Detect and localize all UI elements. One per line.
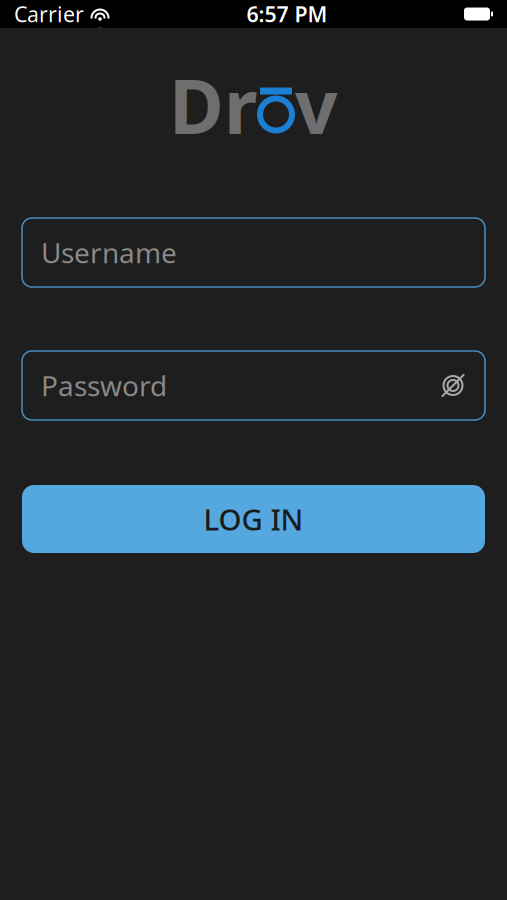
staticText: 6:57 PM <box>246 0 327 28</box>
button[interactable]: Show password <box>433 365 473 405</box>
staticText: v <box>295 55 338 155</box>
staticText: LOG IN <box>203 499 303 538</box>
staticText: Dr <box>169 55 257 155</box>
staticText: Username <box>41 234 177 271</box>
staticText: Password <box>41 367 167 404</box>
button[interactable]: LOG IN <box>22 485 485 553</box>
staticText: Carrier <box>14 0 84 28</box>
